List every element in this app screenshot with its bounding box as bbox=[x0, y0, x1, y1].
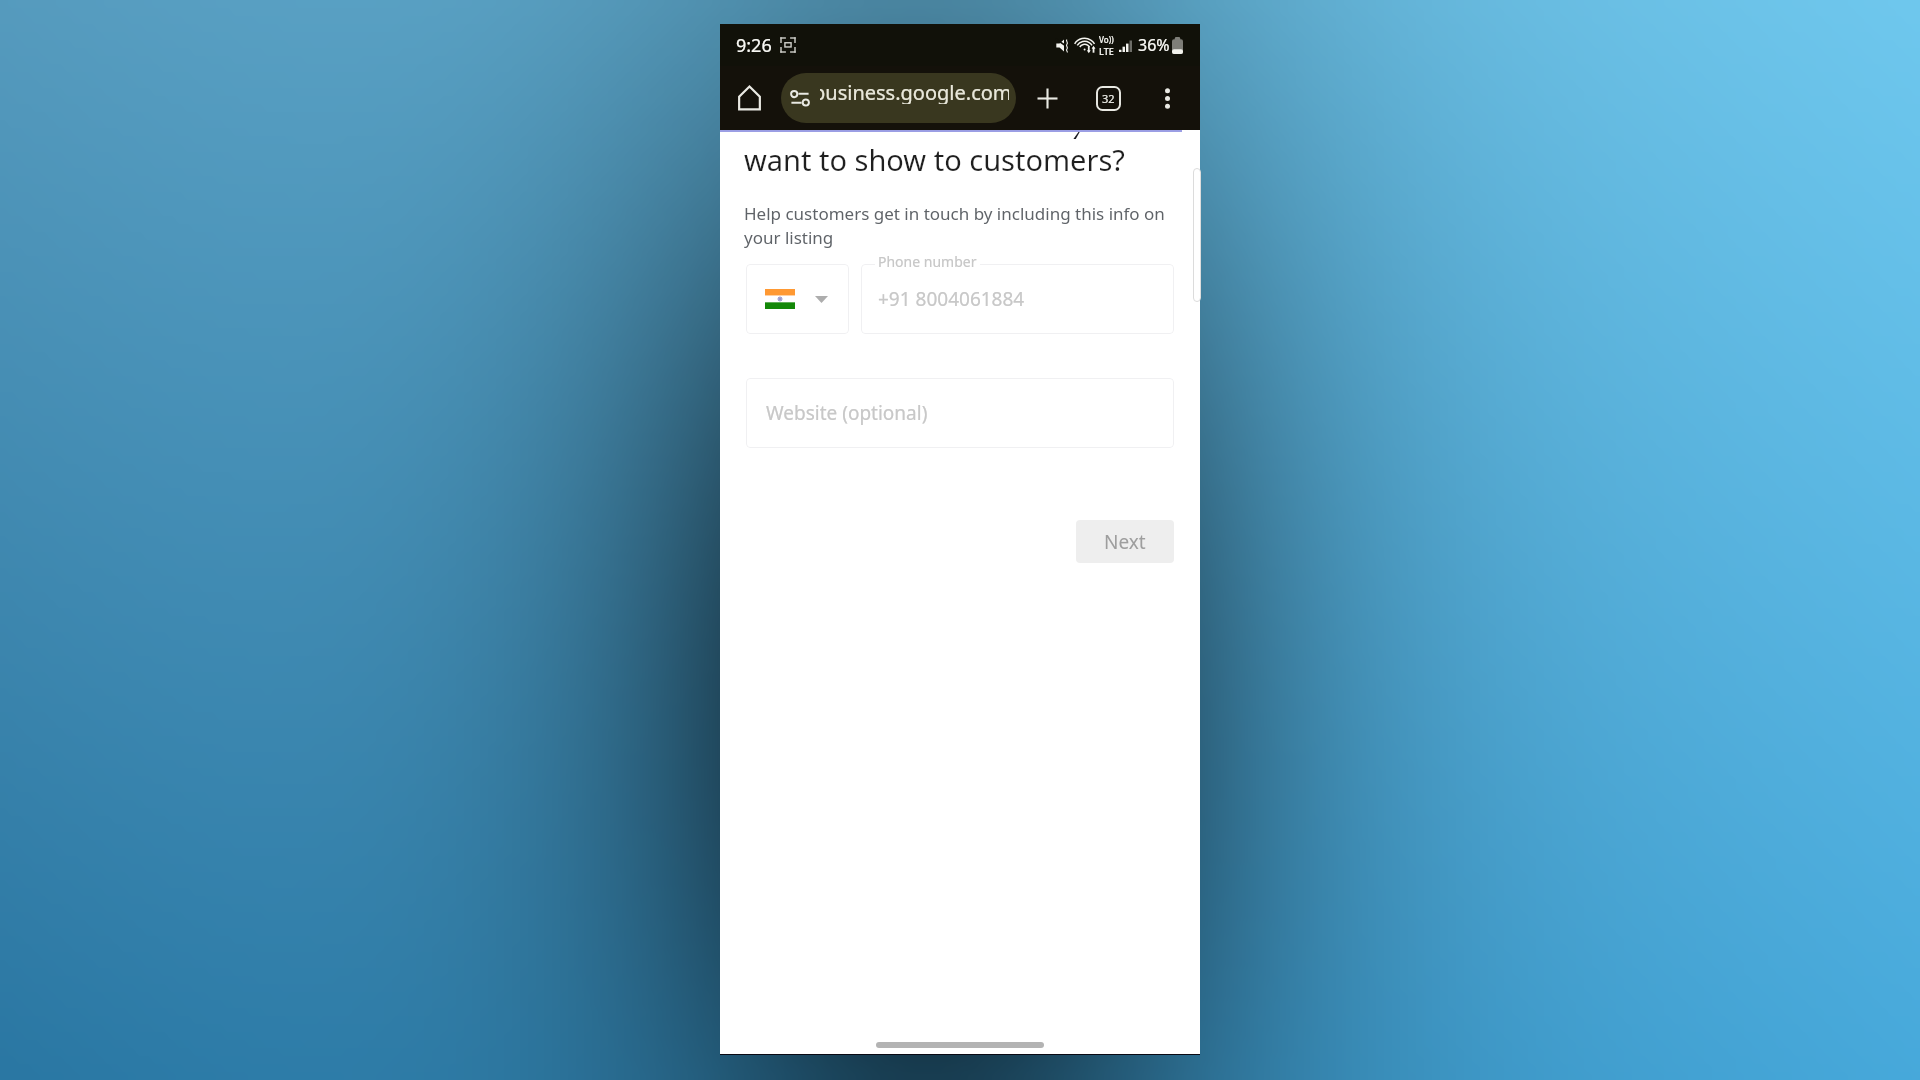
staticText: +91 8004061884 bbox=[878, 286, 1025, 312]
staticText: 9:26 bbox=[736, 33, 772, 58]
staticText: Help customers get in touch by including… bbox=[744, 202, 1176, 249]
staticText: LTE bbox=[1099, 45, 1114, 57]
staticText: 36% bbox=[1138, 34, 1170, 56]
staticText: Phone number bbox=[878, 252, 977, 271]
button[interactable]: +91 8004061884 bbox=[861, 264, 1174, 334]
button[interactable]: More options bbox=[1149, 80, 1185, 116]
staticText: 32 bbox=[1102, 91, 1115, 106]
button[interactable]: Country code, India bbox=[746, 264, 849, 334]
button[interactable]: business.google.com bbox=[781, 73, 1016, 123]
button[interactable]: Tabs, 32 open bbox=[1090, 80, 1126, 116]
button[interactable]: Next bbox=[1076, 520, 1174, 563]
staticText: business.google.com bbox=[820, 83, 1009, 104]
button[interactable]: New tab bbox=[1029, 80, 1065, 116]
button[interactable]: Website (optional) bbox=[746, 378, 1174, 448]
staticText: Vo)) bbox=[1099, 34, 1114, 45]
button[interactable]: Home bbox=[731, 80, 767, 116]
staticText: Next bbox=[1104, 529, 1146, 555]
staticText: Website (optional) bbox=[766, 400, 928, 426]
staticText: want to show to customers? bbox=[744, 140, 1125, 179]
